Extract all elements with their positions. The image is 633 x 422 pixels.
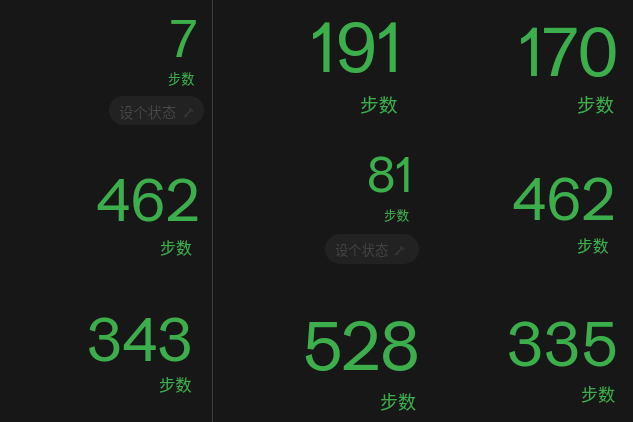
button[interactable]: 步数 462 — [0, 141, 212, 282]
button[interactable]: 步数 7 — [0, 0, 212, 141]
button[interactable]: 设个状态 — [109, 96, 204, 125]
button[interactable]: 步数 343 — [0, 282, 212, 422]
staticText: 步数 — [380, 388, 416, 414]
staticText: 343 — [87, 302, 193, 377]
button[interactable]: 步数 81 — [213, 141, 423, 282]
button[interactable]: 编辑状态 — [394, 245, 405, 256]
staticText: 462 — [512, 163, 616, 235]
button[interactable]: 步数 170 — [423, 0, 633, 141]
staticText: 设个状态 — [335, 240, 389, 259]
staticText: 步数 — [160, 236, 192, 259]
button[interactable]: 编辑状态 — [183, 107, 194, 118]
button[interactable]: 设个状态 — [325, 234, 419, 264]
staticText: 步数 — [384, 205, 410, 223]
button[interactable]: 步数 528 — [213, 282, 423, 422]
staticText: 步数 — [360, 90, 398, 117]
button[interactable]: 步数 335 — [423, 282, 633, 422]
staticText: 步数 — [577, 234, 609, 257]
button[interactable]: 步数 462 — [423, 141, 633, 282]
staticText: 81 — [367, 144, 413, 204]
staticText: 设个状态 — [119, 101, 177, 122]
staticText: 528 — [303, 304, 420, 388]
staticText: 步数 — [581, 381, 616, 406]
staticText: 步数 — [577, 91, 614, 118]
button[interactable]: 步数 191 — [213, 0, 423, 141]
staticText: 步数 — [168, 69, 195, 88]
staticText: 7 — [170, 7, 198, 70]
staticText: 步数 — [159, 372, 192, 396]
staticText: 191 — [311, 4, 402, 91]
staticText: 170 — [519, 10, 619, 94]
staticText: 335 — [507, 305, 618, 382]
staticText: 462 — [96, 164, 200, 236]
